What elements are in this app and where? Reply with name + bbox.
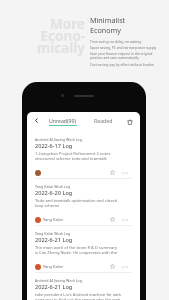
staticText: 2022-6-20 Log [35,189,73,197]
staticText: Minimalist [90,15,126,25]
staticText: position and save automatically [90,55,139,59]
staticText: 2022-6-21 Log [35,236,73,244]
button[interactable]: Yang Kailai Work Log [27,226,140,272]
staticText: Yang Kailai Work Log [35,231,71,236]
button[interactable]: Delete [124,116,135,127]
button[interactable]: Android AI Jiaxing Work Log [27,132,140,178]
staticText: Space saving, PC and narrow power supply [90,45,157,49]
button[interactable]: Back [31,115,42,126]
staticText: Economy [90,25,121,35]
staticText: Econo- [0,27,85,45]
staticText: Save your finance request in the origina… [90,51,153,55]
staticText: take president Liu's Android machine for… [35,292,131,300]
button[interactable]: Star [109,169,116,176]
staticText: Yang Kailai Work Log [35,184,71,189]
staticText: 1.Liangshan Project Refinement 2 notes s… [35,151,131,161]
staticText: Unread(99) [49,117,77,124]
button[interactable]: More [121,216,128,223]
staticText: 2022-6-21 Log [35,283,73,291]
button[interactable]: Star [109,263,116,270]
button[interactable]: Unread(99) [47,117,79,126]
staticText: Time saving: no delay, no waiting [90,39,142,43]
staticText: Android AI Jiaxing Work Log [35,278,83,283]
staticText: The main work of the brain R & D summary… [35,245,131,255]
button[interactable]: Android AI Jiaxing Work Log [27,273,140,300]
staticText: Yang Kailai [43,264,63,269]
staticText: Todo and teamtalk optimization and close… [35,198,131,208]
button[interactable]: Yang Kailai Work Log [27,179,140,225]
staticText: Yang Kailai [43,217,63,222]
staticText: 2022-6-17 Log [35,142,73,150]
staticText: Cost saving: pay by effect without burde… [90,62,155,66]
button[interactable]: More [121,263,128,270]
staticText: More [0,15,85,33]
button[interactable]: More [121,169,128,176]
staticText: Readed [94,117,113,124]
button[interactable]: Readed [92,117,115,124]
staticText: Android AI Jiaxing Work Log [35,137,83,142]
button[interactable]: Star [109,216,116,223]
staticText: mically [0,39,85,57]
